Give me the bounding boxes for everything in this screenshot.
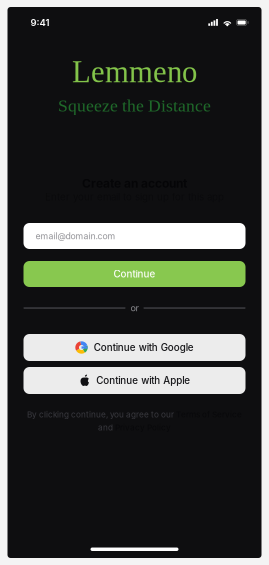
button[interactable]: Continue with Apple [23,367,245,394]
staticText: Continue with Google [94,342,194,353]
staticText: By clicking continue, you agree to our [27,410,176,419]
staticText: Squeeze the Distance [58,96,211,115]
staticText: Create an account [82,176,187,191]
staticText: email@domain.com [35,231,115,241]
button[interactable]: Continue with Google [23,334,245,361]
staticText: Continue with Apple [96,375,190,386]
staticText: and [98,423,115,432]
staticText: Continue [113,268,155,280]
staticText: Lemmeno [72,55,197,89]
staticText: 9:41 [30,17,49,28]
staticText: or [130,302,138,313]
button[interactable]: Continue [23,261,245,287]
